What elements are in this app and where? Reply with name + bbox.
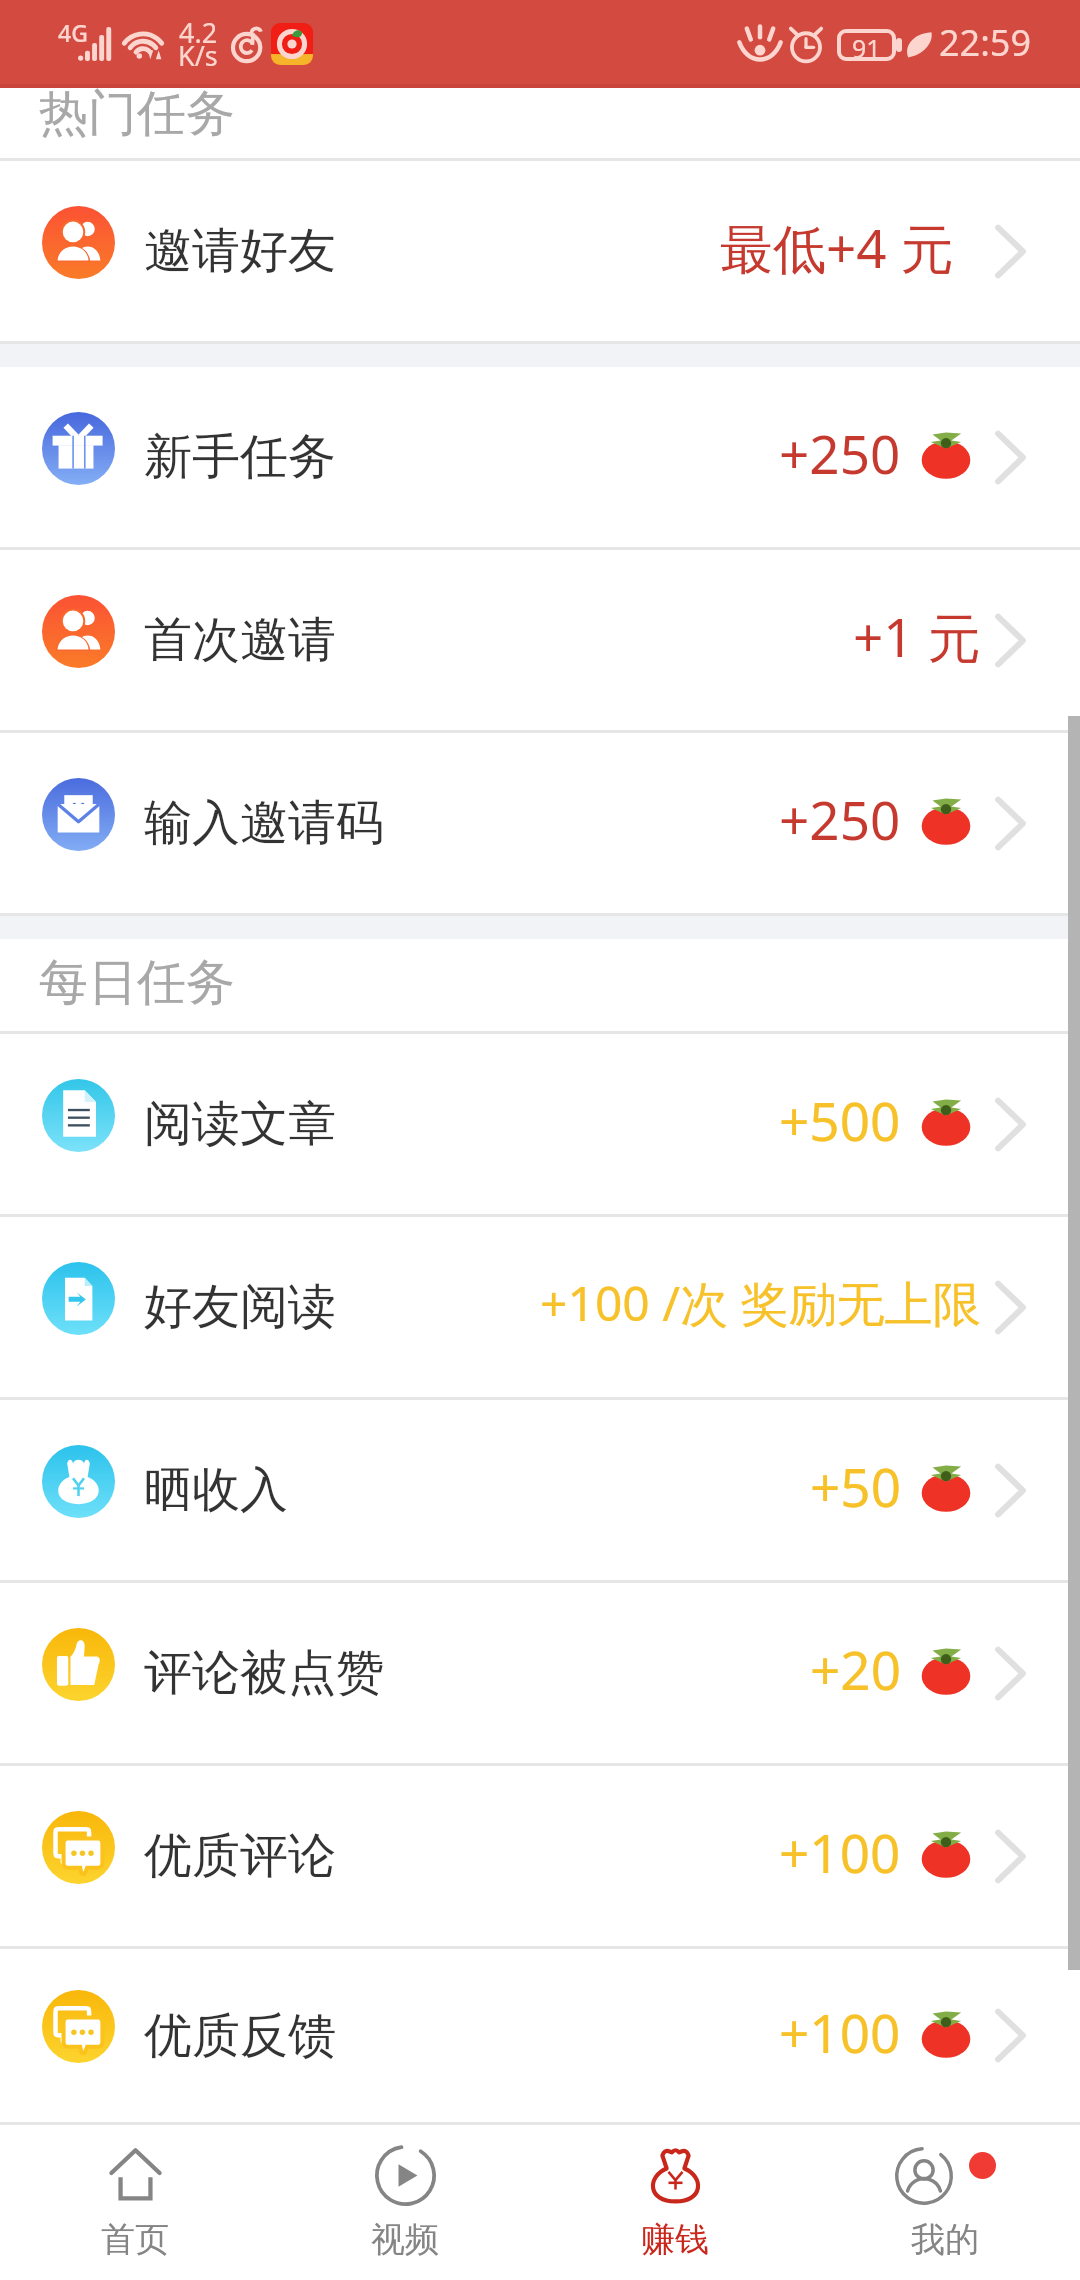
staticText: 4G (58, 17, 88, 48)
button[interactable]: 邀请好友 (0, 161, 1080, 341)
button[interactable]: 优质评论 (0, 1766, 1080, 1946)
staticText: +50 (810, 1450, 901, 1522)
staticText: 优质评论 (144, 1826, 336, 1886)
staticText: +250 (779, 783, 901, 855)
button[interactable]: 晒收入 (0, 1400, 1080, 1580)
button[interactable]: 新手任务 (0, 367, 1080, 547)
staticText: 晒收入 (144, 1460, 288, 1520)
staticText: 阅读文章 (144, 1094, 336, 1154)
staticText: 输入邀请码 (144, 793, 384, 853)
button[interactable]: Video (270, 2145, 540, 2261)
staticText: 视频 (371, 2218, 439, 2261)
staticText: 热门任务 (39, 83, 235, 145)
staticText: 好友阅读 (144, 1277, 336, 1337)
staticText: 91 (852, 31, 881, 59)
staticText: 首页 (101, 2218, 169, 2261)
staticText: 新手任务 (144, 427, 336, 487)
button[interactable]: Profile (810, 2145, 1080, 2261)
staticText: 4.2 (179, 14, 218, 51)
button[interactable]: 好友阅读 (0, 1217, 1080, 1397)
staticText: +500 (779, 1084, 901, 1156)
staticText: 22:59 (939, 18, 1032, 67)
button[interactable]: 优质反馈 (0, 1949, 1080, 2122)
staticText: +20 (810, 1633, 901, 1705)
button[interactable]: Earn money (540, 2145, 810, 2261)
staticText: +100 (779, 1996, 901, 2068)
staticText: 优质反馈 (144, 2006, 336, 2066)
button[interactable]: 评论被点赞 (0, 1583, 1080, 1763)
staticText: 评论被点赞 (144, 1643, 384, 1703)
staticText: 每日任务 (39, 952, 235, 1014)
staticText: +100 /次 奖励无上限 (540, 1270, 981, 1336)
staticText: +250 (779, 417, 901, 489)
staticText: 邀请好友 (144, 221, 336, 281)
staticText: 最低+4 元 (720, 211, 981, 283)
staticText: +100 (779, 1816, 901, 1888)
staticText: 首次邀请 (144, 610, 336, 670)
button[interactable]: 首次邀请 (0, 550, 1080, 730)
button[interactable]: 输入邀请码 (0, 733, 1080, 913)
button[interactable]: Home (0, 2145, 270, 2261)
staticText: +1 元 (853, 600, 981, 672)
staticText: K/s (178, 37, 218, 74)
staticText: 赚钱 (641, 2218, 709, 2261)
button[interactable]: 阅读文章 (0, 1034, 1080, 1214)
staticText: 我的 (911, 2218, 979, 2261)
